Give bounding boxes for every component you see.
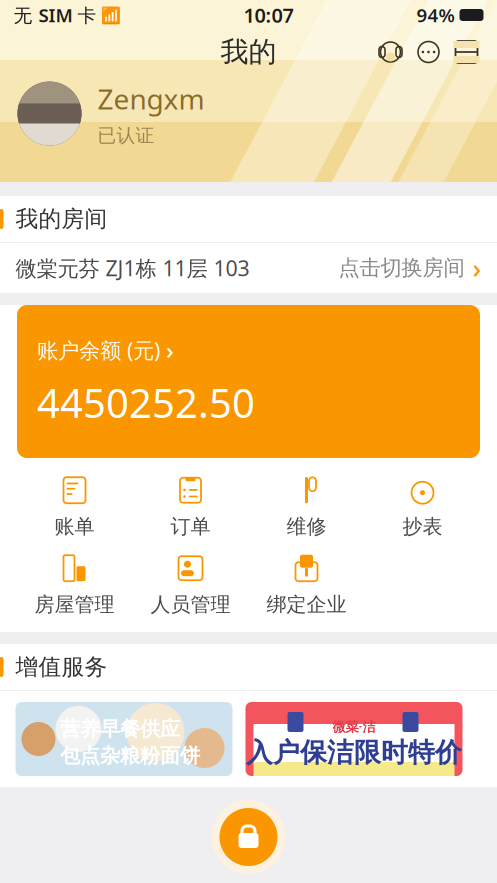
staticText: 无 SIM 卡 bbox=[13, 3, 96, 27]
staticText: 微菜·洁 bbox=[332, 717, 375, 735]
staticText: 绑定企业 bbox=[266, 592, 346, 617]
staticText: 点击切换房间 bbox=[338, 255, 464, 281]
staticText: 微棠元芬 ZJ1栋 11层 103 bbox=[15, 254, 249, 282]
staticText: 房屋管理 bbox=[34, 592, 114, 617]
staticText: › bbox=[472, 250, 481, 286]
staticText: 我的 bbox=[220, 35, 276, 69]
button[interactable]: 抄表 bbox=[364, 468, 480, 546]
staticText: 抄表 bbox=[402, 514, 442, 539]
staticText: 账单 bbox=[54, 514, 94, 539]
staticText: 入户保洁限时特价 bbox=[246, 736, 462, 769]
button[interactable]: 绑定企业 bbox=[248, 546, 364, 624]
button[interactable]: 开门 bbox=[211, 800, 285, 874]
staticText: 我的房间 bbox=[15, 205, 107, 233]
button[interactable]: 维修 bbox=[248, 468, 364, 546]
staticText: 营养早餐供应 bbox=[60, 717, 180, 741]
button[interactable]: 扫一扫 bbox=[447, 33, 485, 71]
staticText: 维修 bbox=[286, 514, 326, 539]
button[interactable]: 入户保洁限时特价 bbox=[245, 702, 462, 776]
button[interactable]: 消息 bbox=[409, 33, 447, 71]
button[interactable]: 账单 bbox=[16, 468, 132, 546]
staticText: 订单 bbox=[170, 514, 210, 539]
button[interactable]: 房屋管理 bbox=[16, 546, 132, 624]
button[interactable]: 人员管理 bbox=[132, 546, 248, 624]
staticText: Zengxm bbox=[97, 80, 204, 117]
staticText: 账户余额 (元) bbox=[37, 336, 160, 364]
button[interactable]: Zengxm bbox=[0, 74, 497, 147]
staticText: 包点杂粮粉面饼 bbox=[60, 743, 200, 768]
staticText: 📶 bbox=[96, 4, 120, 26]
button[interactable]: 微棠元芬 ZJ1栋 11层 103 bbox=[0, 243, 497, 293]
button[interactable]: 营养早餐供应 bbox=[15, 702, 232, 776]
staticText: 4450252.50 bbox=[37, 376, 255, 429]
staticText: 人员管理 bbox=[150, 592, 230, 617]
button[interactable]: 客服 bbox=[371, 33, 409, 71]
staticText: 已认证 bbox=[97, 124, 154, 147]
staticText: 10:07 bbox=[243, 2, 293, 28]
staticText: 94% bbox=[416, 3, 454, 27]
button[interactable]: 订单 bbox=[132, 468, 248, 546]
staticText: 增值服务 bbox=[15, 653, 107, 681]
staticText: › bbox=[166, 334, 174, 366]
button[interactable]: 账户余额 bbox=[17, 305, 480, 458]
